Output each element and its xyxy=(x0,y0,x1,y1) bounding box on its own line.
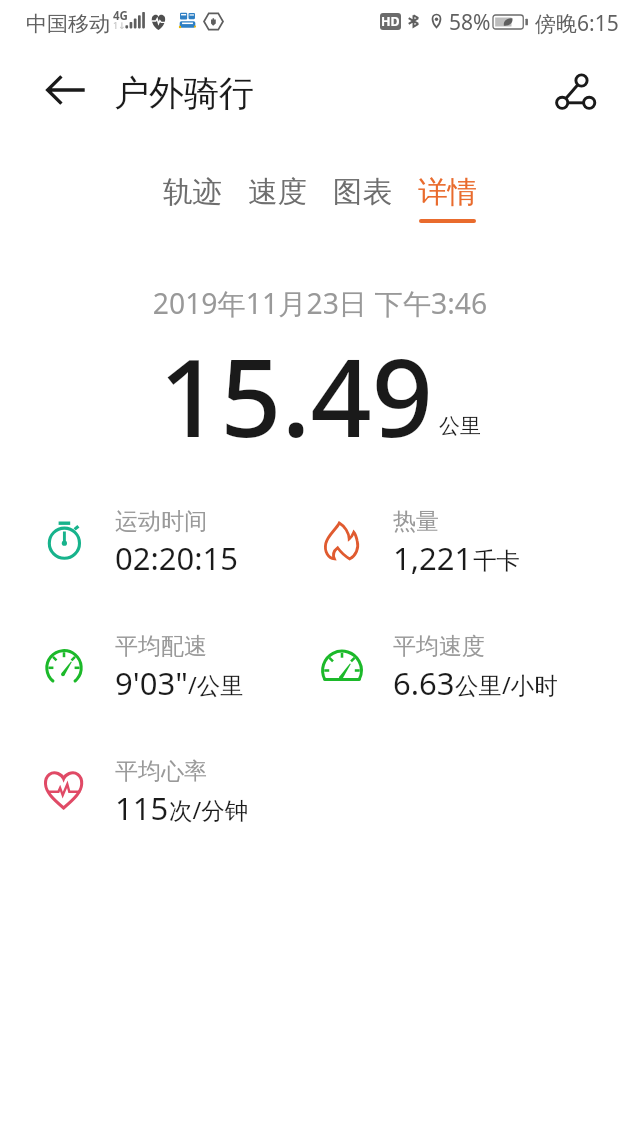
button[interactable]: Share xyxy=(548,66,596,114)
button[interactable]: 运动时间 xyxy=(36,497,296,585)
button[interactable]: Back xyxy=(44,70,86,110)
button[interactable]: 平均速度 xyxy=(314,622,574,710)
staticText: 02:20:15 xyxy=(115,537,239,579)
staticText: 2019年11月23日 下午3:46 xyxy=(0,284,640,323)
button[interactable]: 图表 xyxy=(320,174,405,238)
button[interactable]: 轨迹 xyxy=(150,174,235,238)
staticText: 15.49 xyxy=(159,323,433,469)
staticText: 公里 xyxy=(439,413,481,439)
staticText: 58% xyxy=(449,8,491,37)
button[interactable]: 详情 xyxy=(405,174,490,238)
staticText: 轨迹 xyxy=(163,174,222,211)
staticText: 平均速度 xyxy=(393,632,485,661)
staticText: 115 xyxy=(115,787,169,829)
staticText: 速度 xyxy=(248,174,307,211)
button[interactable]: 速度 xyxy=(235,174,320,238)
staticText: HD xyxy=(381,13,400,30)
button[interactable]: 平均心率 xyxy=(36,747,296,835)
staticText: 9'03" xyxy=(115,662,188,704)
staticText: 中国移动 xyxy=(26,11,110,37)
staticText: 1,221 xyxy=(393,537,473,579)
staticText: 平均配速 xyxy=(115,632,207,661)
staticText: 详情 xyxy=(418,174,477,211)
staticText: 千卡 xyxy=(473,546,520,576)
staticText: 热量 xyxy=(393,507,439,536)
staticText: 次/分钟 xyxy=(169,794,249,826)
staticText: 运动时间 xyxy=(115,507,207,536)
staticText: /公里 xyxy=(188,669,244,701)
staticText: 4G xyxy=(113,8,128,24)
staticText: 户外骑行 xyxy=(114,71,254,115)
staticText: 公里/小时 xyxy=(455,669,558,701)
staticText: 1↓ xyxy=(113,19,126,31)
staticText: 平均心率 xyxy=(115,757,207,786)
button[interactable]: 热量 xyxy=(314,497,574,585)
staticText: 图表 xyxy=(333,174,392,211)
button[interactable]: 平均配速 xyxy=(36,622,296,710)
staticText: 6.63 xyxy=(393,662,455,704)
staticText: 傍晚6:15 xyxy=(535,9,619,38)
